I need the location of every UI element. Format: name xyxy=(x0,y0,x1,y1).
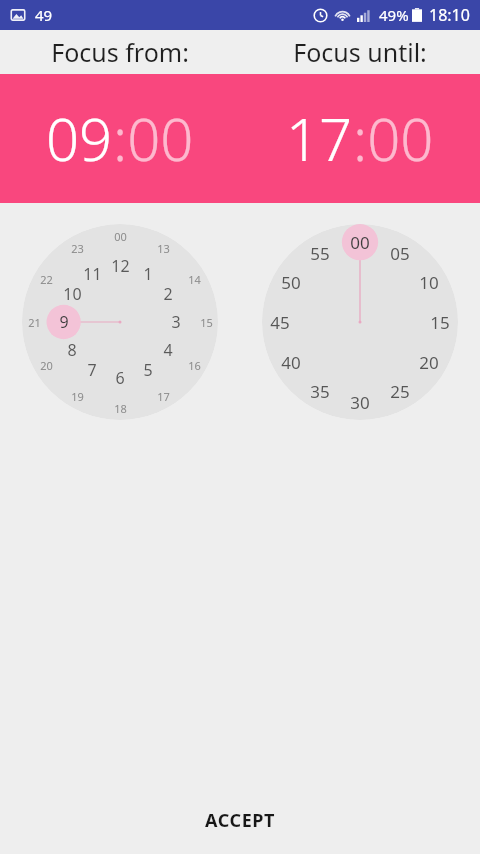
staticText: 4 xyxy=(163,339,173,361)
staticText: 30 xyxy=(350,391,370,414)
button[interactable]: Focus from: xyxy=(0,30,240,74)
button[interactable]: 09 xyxy=(0,74,240,203)
staticText: 09 xyxy=(46,99,113,178)
staticText: 55 xyxy=(310,242,330,265)
staticText: 17 xyxy=(157,389,170,404)
staticText: 18:10 xyxy=(429,4,470,26)
staticText: 2 xyxy=(163,283,173,305)
staticText: 49 xyxy=(35,5,53,25)
staticText: 49% xyxy=(379,5,409,25)
staticText: 19 xyxy=(71,389,84,404)
staticText: 1 xyxy=(143,263,153,285)
staticText: 16 xyxy=(188,358,201,373)
button[interactable]: ACCEPT xyxy=(0,792,480,848)
staticText: 17 xyxy=(286,99,353,178)
staticText: ACCEPT xyxy=(205,808,276,833)
staticText: 3 xyxy=(171,311,181,333)
staticText: 15 xyxy=(200,315,213,330)
staticText: :00 xyxy=(353,99,434,178)
staticText: 25 xyxy=(390,380,410,403)
button[interactable]: Hour picker, 9 xyxy=(22,224,218,420)
staticText: 00 xyxy=(114,229,127,244)
staticText: :00 xyxy=(113,99,194,178)
staticText: 15 xyxy=(430,311,450,334)
staticText: 8 xyxy=(67,339,77,361)
button[interactable]: 17 xyxy=(240,74,480,203)
staticText: 6 xyxy=(115,367,125,389)
staticText: 00 xyxy=(350,231,370,254)
button[interactable]: Minute picker, 00 xyxy=(262,224,458,420)
staticText: 40 xyxy=(281,351,301,374)
staticText: 45 xyxy=(270,311,290,334)
staticText: 22 xyxy=(40,272,53,287)
staticText: 10 xyxy=(63,283,82,305)
staticText: 13 xyxy=(157,241,170,256)
staticText: 50 xyxy=(281,271,301,294)
staticText: 21 xyxy=(28,315,41,330)
staticText: 9 xyxy=(59,311,69,333)
staticText: 20 xyxy=(40,358,53,373)
staticText: 12 xyxy=(111,255,130,277)
staticText: Focus from: xyxy=(51,35,189,69)
staticText: 35 xyxy=(310,380,330,403)
button[interactable]: Focus until: xyxy=(240,30,480,74)
staticText: 20 xyxy=(419,351,439,374)
staticText: 23 xyxy=(71,241,84,256)
staticText: 05 xyxy=(390,242,410,265)
staticText: 7 xyxy=(87,359,97,381)
staticText: 10 xyxy=(419,271,439,294)
staticText: Focus until: xyxy=(293,35,427,69)
staticText: 5 xyxy=(143,359,153,381)
staticText: 18 xyxy=(114,401,127,416)
staticText: 14 xyxy=(188,272,201,287)
staticText: 11 xyxy=(83,263,102,285)
